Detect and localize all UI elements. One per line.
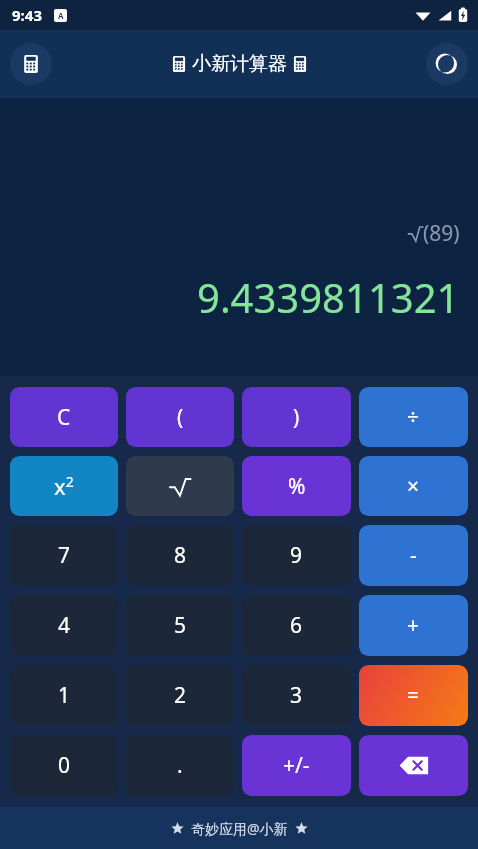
staticText: A (58, 10, 64, 21)
button[interactable]: 1 (10, 665, 118, 726)
staticText: ) (293, 403, 300, 432)
button[interactable]: 7 (10, 525, 118, 586)
button[interactable]: +/- (242, 735, 351, 796)
staticText: +/- (283, 751, 310, 780)
staticText: ÷ (407, 403, 420, 432)
button[interactable]: - (359, 525, 468, 586)
staticText: x2 (54, 471, 74, 501)
button[interactable]: 0 (10, 735, 118, 796)
button[interactable]: . (126, 735, 234, 796)
button[interactable]: Calculator (10, 43, 52, 85)
staticText: 小新计算器 (192, 52, 287, 76)
staticText: 2 (174, 681, 187, 710)
button[interactable]: 2 (126, 665, 234, 726)
staticText: % (288, 472, 306, 501)
button[interactable]: x2 (10, 456, 118, 516)
staticText: 奇妙应用@小新 (191, 819, 288, 838)
button[interactable] (126, 456, 234, 516)
staticText: C (57, 403, 71, 432)
button[interactable]: 奇妙应用@小新 (0, 807, 478, 849)
staticText: - (410, 541, 417, 570)
staticText: 9:43 (12, 5, 42, 25)
button[interactable]: 5 (126, 595, 234, 656)
button[interactable]: Backspace (359, 735, 468, 796)
button[interactable]: % (242, 456, 351, 516)
staticText: . (177, 751, 183, 780)
button[interactable]: 6 (242, 595, 351, 656)
staticText: + (407, 611, 420, 640)
button[interactable]: 9 (242, 525, 351, 586)
button[interactable]: = (359, 665, 468, 726)
button[interactable]: 3 (242, 665, 351, 726)
staticText: 4 (58, 611, 71, 640)
staticText: (89) (423, 219, 460, 248)
button[interactable]: Toggle dark mode (426, 43, 468, 85)
staticText: = (407, 681, 420, 710)
staticText: 5 (174, 611, 187, 640)
button[interactable]: + (359, 595, 468, 656)
staticText: 3 (290, 681, 303, 710)
staticText: ( (177, 403, 184, 432)
button[interactable]: 8 (126, 525, 234, 586)
staticText: 9 (290, 541, 303, 570)
staticText: 0 (58, 751, 71, 780)
staticText: 6 (290, 611, 303, 640)
button[interactable]: C (10, 387, 118, 447)
button[interactable]: × (359, 456, 468, 516)
staticText: 8 (174, 541, 187, 570)
staticText: 1 (58, 681, 71, 710)
staticText: × (407, 472, 420, 501)
button[interactable]: ÷ (359, 387, 468, 447)
staticText: 9.4339811321 (197, 270, 460, 324)
button[interactable]: 4 (10, 595, 118, 656)
staticText: 7 (58, 541, 71, 570)
button[interactable]: ( (126, 387, 234, 447)
button[interactable]: ) (242, 387, 351, 447)
